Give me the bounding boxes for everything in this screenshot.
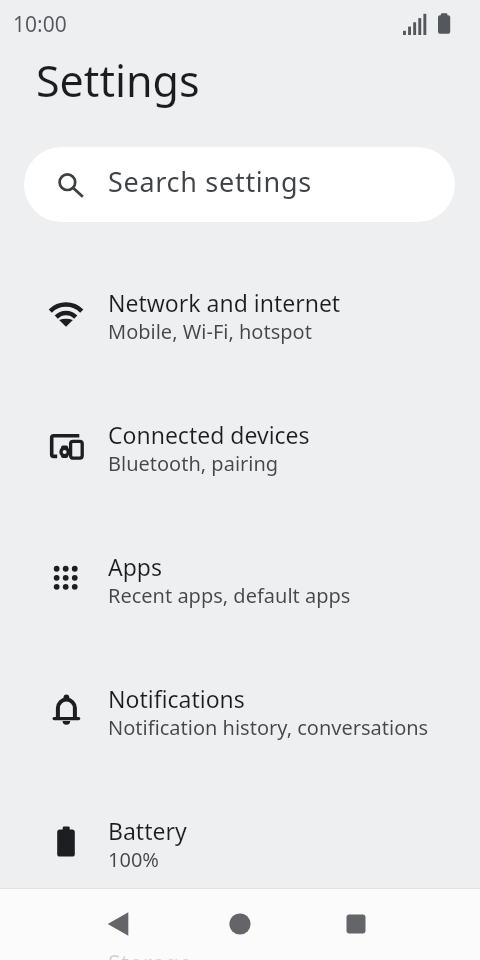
button[interactable]: Battery <box>0 778 480 910</box>
staticText: 10:00 <box>13 10 67 39</box>
staticText: 100% <box>108 846 159 873</box>
staticText: Apps <box>108 551 163 582</box>
staticText: Settings <box>36 51 200 110</box>
staticText: Network and internet <box>108 287 341 318</box>
button[interactable]: Search settings <box>24 147 455 222</box>
staticText: Connected devices <box>108 419 310 450</box>
staticText: Storage <box>108 947 192 960</box>
button[interactable] <box>216 900 264 948</box>
staticText: Notifications <box>108 683 245 714</box>
button[interactable]: Connected devices <box>0 382 480 514</box>
staticText: Search settings <box>108 163 312 200</box>
staticText: Mobile, Wi-Fi, hotspot <box>108 318 312 345</box>
staticText: Notification history, conversations <box>108 714 429 741</box>
staticText: Bluetooth, pairing <box>108 450 279 477</box>
button[interactable] <box>332 900 380 948</box>
button[interactable]: Apps <box>0 514 480 646</box>
button[interactable]: Network and internet <box>0 250 480 382</box>
button[interactable]: Notifications <box>0 646 480 778</box>
staticText: Battery <box>108 815 187 846</box>
staticText: Recent apps, default apps <box>108 582 351 609</box>
button[interactable] <box>94 900 142 948</box>
